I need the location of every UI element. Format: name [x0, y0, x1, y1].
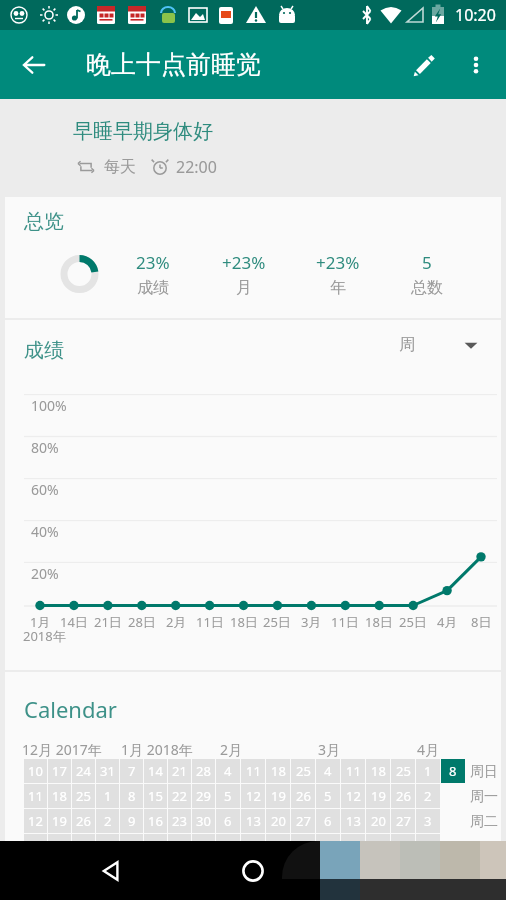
button[interactable]: 3	[416, 809, 440, 833]
button[interactable]: 4	[416, 834, 440, 858]
button[interactable]: 10	[120, 834, 143, 858]
button[interactable]: 7	[316, 834, 340, 858]
button[interactable]: 28	[192, 759, 215, 783]
button[interactable]: 8	[441, 759, 465, 783]
button[interactable]: Back	[10, 41, 58, 89]
button[interactable]: 4	[216, 759, 240, 783]
staticText: 13	[246, 812, 261, 830]
button[interactable]: 20	[266, 809, 290, 833]
button[interactable]: 25	[391, 759, 415, 783]
button[interactable]: 12	[24, 809, 47, 833]
button[interactable]: 10	[24, 759, 47, 783]
button[interactable]: 6	[316, 809, 340, 833]
button[interactable]: 24	[168, 834, 191, 858]
button[interactable]: 18	[366, 759, 390, 783]
button[interactable]: 26	[391, 784, 415, 808]
button[interactable]: 27	[391, 809, 415, 833]
button[interactable]: 3	[96, 834, 119, 858]
button[interactable]: 15	[144, 784, 167, 808]
staticText: 6	[324, 812, 332, 830]
staticText: 11	[346, 762, 361, 780]
button[interactable]: 25	[72, 784, 95, 808]
button[interactable]: 13	[341, 809, 365, 833]
button[interactable]: 12	[241, 784, 265, 808]
staticText: 每天	[104, 157, 136, 177]
button[interactable]: 11	[341, 759, 365, 783]
button[interactable]: 28	[391, 834, 415, 858]
button[interactable]: 13	[24, 834, 47, 858]
staticText: 25日	[399, 613, 427, 631]
staticText: 5	[324, 787, 332, 805]
button[interactable]: 2	[96, 809, 119, 833]
button[interactable]: 9	[120, 809, 143, 833]
button[interactable]: 27	[72, 834, 95, 858]
button[interactable]: 14	[341, 834, 365, 858]
button[interactable]: 4	[316, 759, 340, 783]
button[interactable]: 17	[48, 759, 71, 783]
button[interactable]: 18	[48, 784, 71, 808]
staticText: 4月	[437, 613, 458, 631]
staticText: 40%	[31, 522, 59, 541]
button[interactable]: 1	[96, 784, 119, 808]
button[interactable]: 13	[241, 809, 265, 833]
button[interactable]: 27	[291, 809, 315, 833]
staticText: 成绩	[24, 338, 64, 363]
staticText: 26	[396, 787, 411, 805]
button[interactable]: 26	[291, 784, 315, 808]
button[interactable]: 23	[168, 809, 191, 833]
staticText: 2月	[166, 613, 187, 631]
button[interactable]	[441, 834, 465, 858]
button[interactable]: 周	[399, 326, 493, 364]
button[interactable]: Back	[80, 841, 142, 900]
staticText: 成绩	[137, 278, 169, 298]
button[interactable]: 31	[96, 759, 119, 783]
staticText: 28日	[128, 613, 156, 631]
button[interactable]: Home	[222, 841, 284, 900]
button[interactable]: 26	[72, 809, 95, 833]
button[interactable]: 21	[168, 759, 191, 783]
staticText: 8	[449, 762, 457, 780]
staticText: 26	[76, 812, 91, 830]
button[interactable]: 22	[168, 784, 191, 808]
staticText: 20	[271, 812, 286, 830]
button[interactable]: 20	[366, 809, 390, 833]
button[interactable]: 16	[144, 809, 167, 833]
button[interactable]: 5	[216, 784, 240, 808]
button[interactable]: 24	[72, 759, 95, 783]
button[interactable]: 14	[241, 834, 265, 858]
button[interactable]: Edit	[400, 41, 448, 89]
staticText: 25	[296, 762, 311, 780]
button[interactable]: 12	[341, 784, 365, 808]
staticText: 晚上十点前睡觉	[86, 49, 261, 80]
button[interactable]: 11	[24, 784, 47, 808]
button[interactable]: 19	[48, 809, 71, 833]
button[interactable]: 17	[144, 834, 167, 858]
button[interactable]: 6	[216, 809, 240, 833]
staticText: 23	[172, 812, 187, 830]
button[interactable]: More options	[454, 43, 498, 87]
button[interactable]: 31	[192, 834, 215, 858]
button[interactable]: 1	[416, 759, 440, 783]
staticText: 18	[52, 787, 67, 805]
button[interactable]: 29	[192, 784, 215, 808]
button[interactable]: 8	[120, 784, 143, 808]
button[interactable]: 19	[266, 784, 290, 808]
button[interactable]: 14	[144, 759, 167, 783]
staticText: 17	[148, 837, 163, 855]
staticText: 总数	[411, 278, 443, 298]
button[interactable]: 5	[316, 784, 340, 808]
button[interactable]: 11	[241, 759, 265, 783]
button[interactable]: 19	[366, 784, 390, 808]
button[interactable]: 21	[266, 834, 290, 858]
button[interactable]: 7	[120, 759, 143, 783]
button[interactable]: 21	[366, 834, 390, 858]
button[interactable]: 7	[216, 834, 240, 858]
button[interactable]: 25	[291, 759, 315, 783]
button[interactable]: 28	[291, 834, 315, 858]
button[interactable]: 18	[266, 759, 290, 783]
button[interactable]: 30	[192, 809, 215, 833]
button[interactable]: 2	[416, 784, 440, 808]
button[interactable]: 20	[48, 834, 71, 858]
